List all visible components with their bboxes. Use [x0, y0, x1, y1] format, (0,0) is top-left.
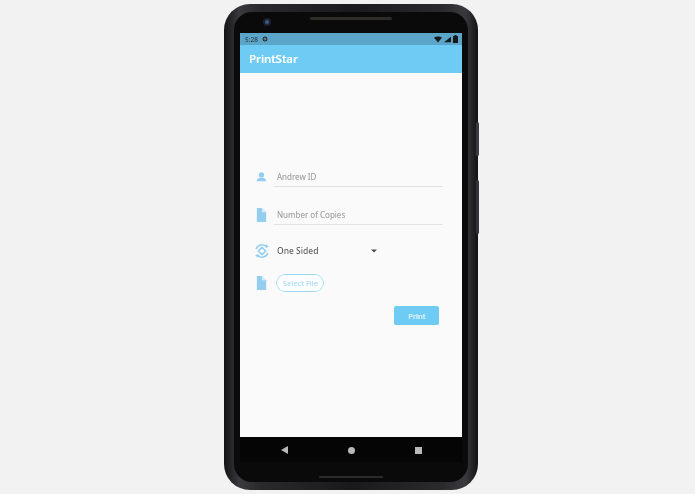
staticText: One Sided: [277, 245, 319, 257]
other: Document: [256, 208, 267, 222]
staticText: 5:28: [245, 35, 258, 44]
button[interactable]: Andrew ID: [274, 167, 443, 187]
staticText: Number of Copies: [277, 209, 346, 220]
button[interactable]: Print: [394, 306, 439, 325]
button[interactable]: Home: [341, 440, 361, 460]
button[interactable]: Number of Copies: [274, 205, 443, 225]
button[interactable]: Select File: [276, 274, 324, 292]
staticText: Print: [408, 311, 426, 321]
staticText: Select File: [283, 278, 318, 288]
other: Account: [255, 171, 268, 184]
button[interactable]: Back: [274, 440, 294, 460]
other: Document: [256, 276, 267, 290]
button[interactable]: One Sided: [274, 242, 443, 260]
staticText: Andrew ID: [277, 171, 317, 182]
staticText: PrintStar: [249, 51, 298, 67]
button[interactable]: Recent apps: [408, 440, 428, 460]
other: Sided option: [255, 244, 269, 258]
